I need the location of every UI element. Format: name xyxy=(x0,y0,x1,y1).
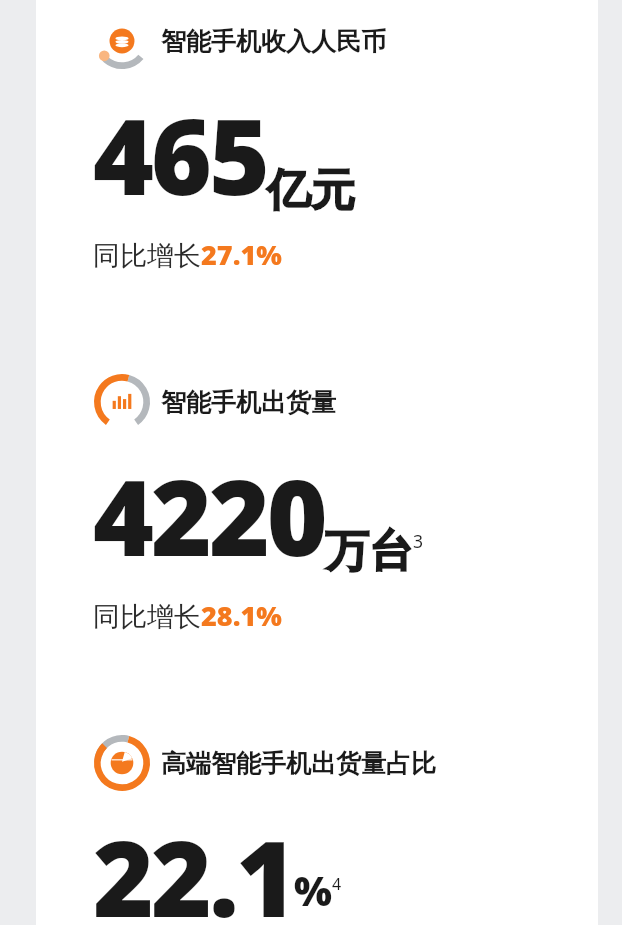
staticText: 智能手机收入人民币 xyxy=(161,26,386,57)
staticText: 亿元 xyxy=(267,163,355,218)
button[interactable]: 同比增长27.1% xyxy=(93,236,282,273)
other: 智能手机收入人民币 xyxy=(93,12,151,70)
staticText: 智能手机出货量 xyxy=(161,387,336,418)
staticText: 高端智能手机出货量占比 xyxy=(161,748,436,779)
button[interactable]: 智能手机出货量 xyxy=(93,373,578,431)
staticText: 万台3 xyxy=(325,524,424,579)
button[interactable]: 智能手机收入人民币 xyxy=(93,12,578,70)
staticText: 22.1 xyxy=(93,806,294,925)
button[interactable]: 同比增长28.1% xyxy=(93,597,282,634)
staticText: 465 xyxy=(93,84,267,226)
button[interactable]: 高端智能手机出货量占比 xyxy=(93,734,578,792)
other: 智能手机出货量 xyxy=(93,373,151,431)
staticText: 4220 xyxy=(93,445,325,587)
other: 高端智能手机出货量占比 xyxy=(93,734,151,792)
staticText: %4 xyxy=(294,863,342,917)
